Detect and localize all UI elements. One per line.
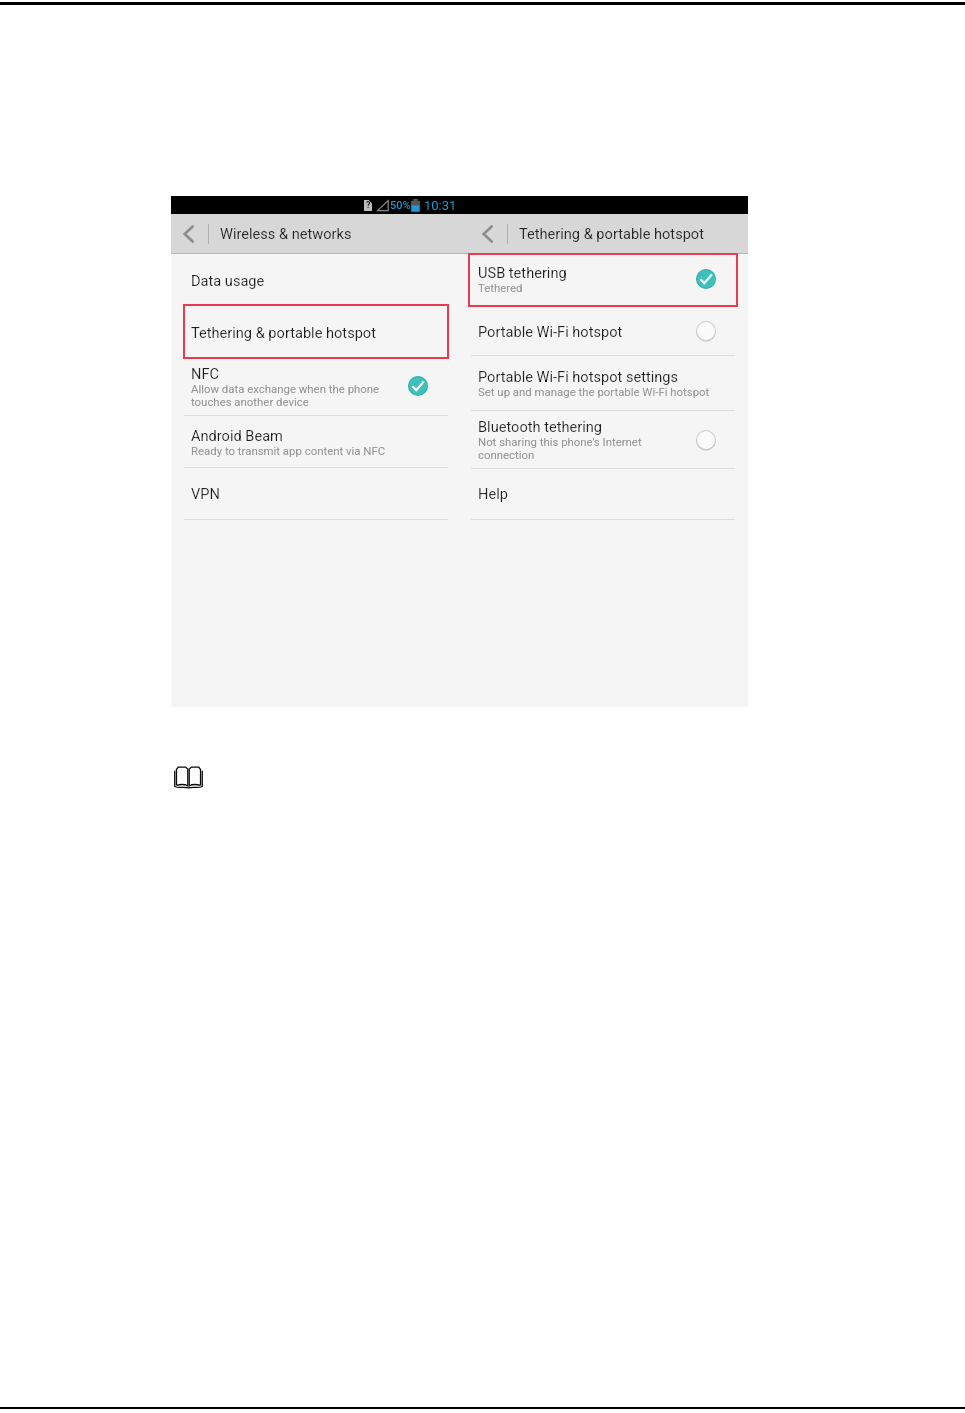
staticText: Data usage	[191, 272, 265, 289]
staticText: Portable Wi-Fi hotspot settings	[478, 368, 679, 385]
button[interactable]: Back	[470, 214, 748, 253]
staticText: ?	[366, 200, 371, 211]
other: Back	[179, 223, 198, 245]
button[interactable]: Data usage	[171, 253, 470, 306]
staticText: Set up and manage the portable Wi-Fi hot…	[478, 385, 710, 398]
staticText: NFC	[191, 365, 219, 382]
button[interactable]: Tethering & portable hotspot	[171, 306, 470, 357]
staticText: Tethered	[478, 281, 523, 294]
button[interactable]: NFC	[171, 357, 470, 415]
staticText: Not sharing this phone’s Internet	[478, 435, 642, 448]
staticText: Allow data exchange when the phone	[191, 382, 380, 395]
staticText: USB tethering	[478, 264, 567, 281]
button[interactable]: Android Beam	[171, 415, 470, 467]
staticText: Tethering & portable hotspot	[191, 324, 376, 341]
button[interactable]: Portable Wi-Fi hotspot	[470, 305, 748, 356]
button[interactable]: Portable Wi-Fi hotspot settings	[470, 355, 748, 410]
staticText: Bluetooth tethering	[478, 418, 602, 435]
button[interactable]: USB tethering	[470, 253, 748, 304]
staticText: Portable Wi-Fi hotspot	[478, 323, 623, 340]
staticText: VPN	[191, 485, 220, 502]
staticText: 10:31	[424, 198, 457, 212]
staticText: Android Beam	[191, 427, 283, 444]
button[interactable]: Back	[171, 214, 470, 253]
staticText: Help	[478, 485, 508, 502]
staticText: Wireless & networks	[220, 225, 352, 242]
staticText: connection	[478, 448, 535, 461]
button[interactable]: Bluetooth tethering	[470, 410, 748, 468]
staticText: Ready to transmit app content via NFC	[191, 444, 386, 457]
button[interactable]: Help	[470, 467, 748, 518]
staticText: touches another device	[191, 395, 309, 408]
button[interactable]: VPN	[171, 467, 470, 519]
other: Back	[478, 223, 497, 245]
staticText: Tethering & portable hotspot	[519, 225, 704, 242]
staticText: 50%	[390, 199, 411, 212]
